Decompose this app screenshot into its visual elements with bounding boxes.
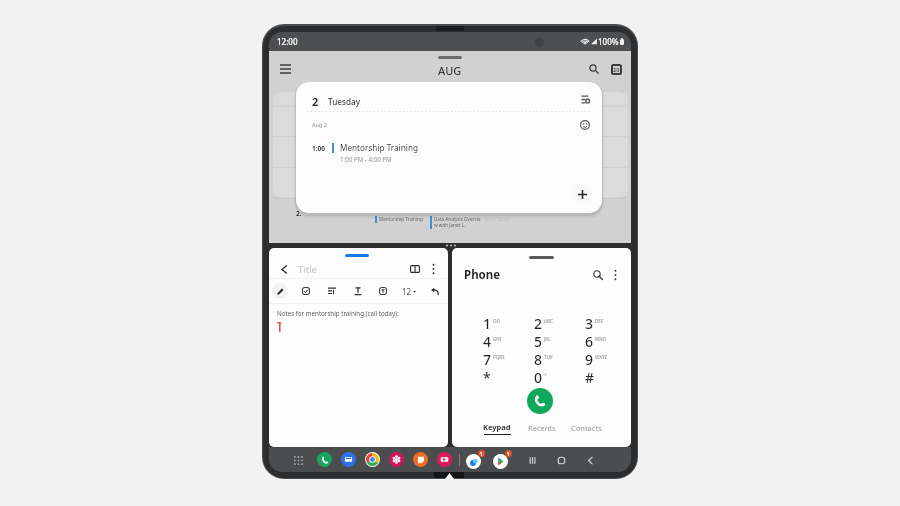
button[interactable]: Call xyxy=(527,388,553,414)
button[interactable]: 1 xyxy=(483,314,534,332)
staticText: Mentorship Training xyxy=(379,216,423,222)
button[interactable]: More options xyxy=(426,262,440,276)
button[interactable] xyxy=(389,452,404,467)
staticText: 2. xyxy=(296,209,302,218)
staticText: Mentorship Training xyxy=(340,142,418,153)
staticText: 2 xyxy=(312,94,319,109)
staticText: 9 xyxy=(585,350,594,368)
button[interactable]: More options xyxy=(608,267,623,282)
button[interactable]: Checklist xyxy=(298,283,314,299)
button[interactable]: Contacts xyxy=(564,414,609,442)
staticText: 2 xyxy=(534,314,543,332)
staticText: Data Analysis Overvie xyxy=(434,216,481,222)
button[interactable] xyxy=(413,452,428,467)
button[interactable]: Search xyxy=(590,267,605,282)
staticText: Title xyxy=(298,263,317,276)
button[interactable] xyxy=(466,454,481,469)
staticText: Team Scrum xyxy=(484,216,511,222)
button[interactable]: Paragraph xyxy=(324,283,340,299)
staticText: 4 xyxy=(483,332,492,350)
staticText: 1:00 xyxy=(312,144,325,153)
button[interactable]: Mood xyxy=(578,118,591,131)
button[interactable]: Undo xyxy=(427,283,443,299)
button[interactable]: 5 xyxy=(534,332,585,350)
staticText: 7 xyxy=(483,350,492,368)
button[interactable]: 9 xyxy=(585,350,631,368)
staticText: Notes for mentorship training (call toda… xyxy=(277,309,399,317)
staticText: PQRS xyxy=(493,354,505,360)
button[interactable]: Menu xyxy=(276,60,294,78)
staticText: 1 xyxy=(483,314,492,332)
staticText: 12:00 xyxy=(277,36,298,47)
button[interactable]: 2 xyxy=(534,314,585,332)
staticText: ABC xyxy=(544,318,553,324)
button[interactable]: 4 xyxy=(483,332,534,350)
staticText: + xyxy=(544,372,547,378)
staticText: AUG xyxy=(438,63,462,78)
button[interactable]: 0 xyxy=(534,368,585,386)
button[interactable] xyxy=(341,452,356,467)
staticText: 5 xyxy=(534,332,543,350)
button[interactable]: * xyxy=(483,368,534,386)
button[interactable]: Agenda view xyxy=(578,92,592,106)
button[interactable]: Pen xyxy=(272,283,288,299)
staticText: 0 xyxy=(534,368,543,386)
button[interactable] xyxy=(437,452,452,467)
button[interactable]: Today xyxy=(607,60,625,78)
button[interactable] xyxy=(493,454,508,469)
staticText: Contacts xyxy=(571,423,602,433)
staticText: 100% xyxy=(598,36,619,47)
button[interactable]: 7 xyxy=(483,350,534,368)
staticText: Tuesday xyxy=(328,96,361,107)
button[interactable]: Add event xyxy=(572,184,592,204)
staticText: Keypad xyxy=(483,422,511,432)
button[interactable]: 12 xyxy=(401,286,417,297)
button[interactable]: 8 xyxy=(534,350,585,368)
button[interactable]: Back xyxy=(582,452,598,468)
button[interactable] xyxy=(365,452,380,467)
button[interactable]: 3 xyxy=(585,314,631,332)
button[interactable] xyxy=(317,452,332,467)
staticText: 6 xyxy=(585,332,594,350)
staticText: OO xyxy=(493,318,501,324)
button[interactable]: # xyxy=(585,368,631,386)
staticText: JKL xyxy=(544,336,551,342)
button[interactable]: Keypad xyxy=(474,414,519,442)
button[interactable]: Back xyxy=(277,262,291,276)
button[interactable]: 6 xyxy=(585,332,631,350)
staticText: Recents xyxy=(528,423,556,433)
staticText: TUV xyxy=(544,354,553,360)
button[interactable]: Recent apps xyxy=(524,452,540,468)
button[interactable]: Text format xyxy=(350,283,366,299)
staticText: 8 xyxy=(534,350,543,368)
staticText: Aug 2 xyxy=(312,121,327,128)
staticText: Phone xyxy=(464,267,501,283)
staticText: w with Janet L. xyxy=(434,222,466,228)
staticText: WXYZ xyxy=(595,354,608,360)
staticText: 20 xyxy=(613,66,620,73)
staticText: 1:00 PM - 4:00 PM xyxy=(340,155,392,163)
button[interactable]: All apps xyxy=(291,453,305,467)
button[interactable]: Reading mode xyxy=(408,262,422,276)
staticText: DEF xyxy=(595,318,604,324)
staticText: MNO xyxy=(595,336,607,342)
staticText: GHI xyxy=(493,336,502,342)
button[interactable]: Home xyxy=(553,452,569,468)
button[interactable]: Recents xyxy=(519,414,564,442)
staticText: 1 xyxy=(507,451,510,457)
button[interactable]: Search xyxy=(585,60,603,78)
staticText: # xyxy=(585,368,595,386)
staticText: 1 xyxy=(480,451,483,457)
staticText: 12 xyxy=(402,286,412,297)
button[interactable]: Insert xyxy=(375,283,391,299)
staticText: * xyxy=(483,368,491,386)
staticText: 3 xyxy=(585,314,594,332)
